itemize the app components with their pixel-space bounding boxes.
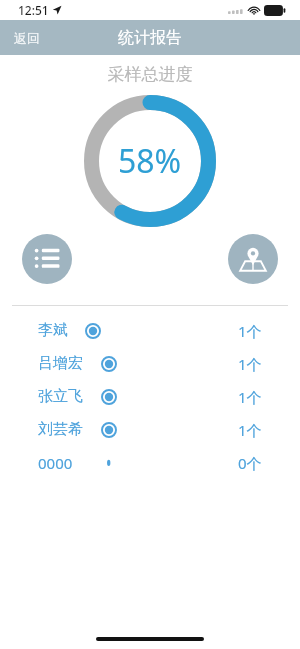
- staticText: 1个: [238, 387, 262, 407]
- button[interactable]: 李斌: [0, 314, 300, 347]
- staticText: 1个: [238, 420, 262, 440]
- button[interactable]: 列表: [22, 234, 72, 284]
- staticText: 1个: [238, 354, 262, 374]
- staticText: 58%: [118, 139, 182, 183]
- staticText: 刘芸希: [38, 420, 83, 439]
- staticText: 吕增宏: [38, 354, 83, 373]
- button[interactable]: 吕增宏: [0, 347, 300, 380]
- button[interactable]: 张立飞: [0, 380, 300, 413]
- staticText: 李斌: [38, 321, 68, 340]
- button[interactable]: 返回: [0, 24, 54, 52]
- staticText: 12:51: [18, 2, 49, 18]
- staticText: 0个: [238, 453, 262, 473]
- staticText: 返回: [14, 30, 40, 46]
- button[interactable]: 地图: [228, 234, 278, 284]
- staticText: 统计报告: [118, 28, 182, 48]
- button[interactable]: 刘芸希: [0, 413, 300, 446]
- staticText: 张立飞: [38, 387, 83, 406]
- staticText: 采样总进度: [0, 64, 300, 85]
- staticText: 1个: [238, 321, 262, 341]
- staticText: 0000: [38, 453, 73, 473]
- button[interactable]: 0000: [0, 446, 300, 479]
